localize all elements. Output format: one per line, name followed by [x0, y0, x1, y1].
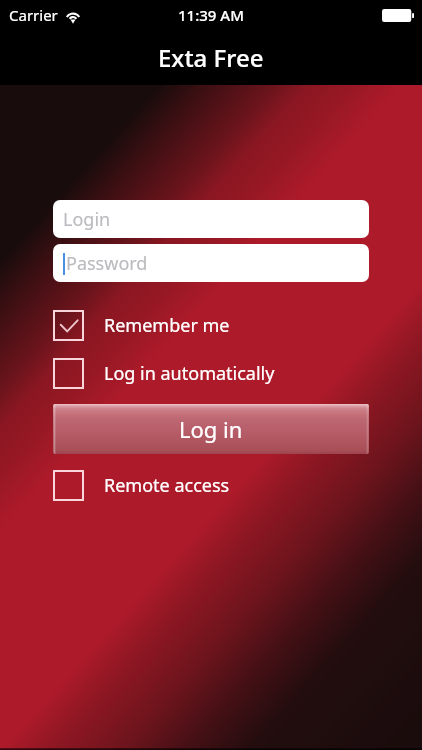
- staticText: Remote access: [104, 473, 230, 498]
- staticText: Carrier: [9, 5, 58, 25]
- button[interactable]: Log in automatically: [53, 358, 369, 389]
- staticText: Password: [66, 251, 148, 276]
- staticText: Exta Free: [158, 41, 264, 74]
- button[interactable]: Login: [53, 200, 369, 238]
- button[interactable]: Log in: [53, 404, 369, 454]
- button[interactable]: Remember me: [53, 310, 369, 341]
- staticText: Log in automatically: [104, 361, 275, 386]
- staticText: Remember me: [104, 313, 230, 338]
- staticText: Login: [63, 207, 111, 232]
- button[interactable]: Password: [53, 244, 369, 282]
- staticText: 11:39 AM: [178, 5, 244, 25]
- staticText: Log in: [179, 414, 243, 444]
- button[interactable]: Remote access: [53, 470, 369, 501]
